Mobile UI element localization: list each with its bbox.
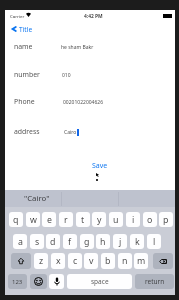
staticText: e xyxy=(47,214,52,226)
button[interactable]: m xyxy=(134,253,148,269)
staticText: name xyxy=(14,42,33,51)
staticText: o xyxy=(147,214,153,226)
button[interactable]: Save xyxy=(89,158,111,174)
button[interactable]: Emoji xyxy=(30,274,47,289)
staticText: Carrier xyxy=(10,13,25,19)
button[interactable]: p xyxy=(159,212,173,227)
button[interactable]: 123 xyxy=(8,274,27,289)
staticText: a xyxy=(18,236,23,248)
staticText: m xyxy=(137,255,146,267)
button[interactable]: g xyxy=(80,234,94,249)
staticText: j xyxy=(119,236,122,248)
staticText: p xyxy=(163,214,169,226)
staticText: space xyxy=(91,277,109,286)
button[interactable]: x xyxy=(51,253,65,269)
staticText: w xyxy=(30,214,37,226)
staticText: y xyxy=(97,214,102,226)
staticText: address xyxy=(14,127,40,136)
button[interactable]: n xyxy=(118,253,132,269)
staticText: l xyxy=(153,236,156,248)
button[interactable]: j xyxy=(113,234,127,249)
staticText: c xyxy=(73,255,78,267)
button[interactable]: Dictate xyxy=(49,274,64,289)
staticText: n xyxy=(122,255,128,267)
button[interactable]: Shift xyxy=(11,253,31,269)
button[interactable]: f xyxy=(63,234,77,249)
button[interactable]: space xyxy=(67,274,132,289)
staticText: v xyxy=(89,255,94,267)
button[interactable]: z xyxy=(34,253,48,269)
button[interactable]: c xyxy=(68,253,82,269)
button[interactable]: q xyxy=(9,212,23,227)
staticText: x xyxy=(56,255,61,267)
staticText: d xyxy=(50,236,56,248)
button[interactable]: a xyxy=(13,234,27,249)
staticText: h xyxy=(100,236,106,248)
staticText: 123 xyxy=(12,278,23,286)
button[interactable]: s xyxy=(30,234,44,249)
staticText: 010 xyxy=(62,72,71,79)
button[interactable]: Backspace xyxy=(153,253,173,269)
staticText: i xyxy=(132,214,135,226)
staticText: u xyxy=(113,214,119,226)
staticText: s xyxy=(35,236,40,248)
button[interactable]: t xyxy=(76,212,90,227)
staticText: Cairo xyxy=(64,129,77,136)
button[interactable]: b xyxy=(101,253,115,269)
button[interactable]: u xyxy=(109,212,123,227)
button[interactable]: d xyxy=(46,234,60,249)
staticText: b xyxy=(105,255,111,267)
staticText: number xyxy=(14,70,40,79)
staticText: q xyxy=(13,214,19,226)
staticText: he sham Bakr xyxy=(61,44,94,51)
button[interactable]: h xyxy=(96,234,110,249)
staticText: Title xyxy=(19,25,33,34)
staticText: 4:42 PM xyxy=(84,13,103,20)
button[interactable]: return xyxy=(135,274,174,289)
staticText: t xyxy=(81,214,85,226)
staticText: Phone xyxy=(14,97,35,106)
button[interactable]: Title xyxy=(5,23,33,35)
staticText: r xyxy=(64,214,68,226)
staticText: g xyxy=(84,236,90,248)
button[interactable]: l xyxy=(147,234,161,249)
staticText: z xyxy=(39,255,44,267)
button[interactable]: w xyxy=(26,212,40,227)
button[interactable]: k xyxy=(130,234,144,249)
button[interactable]: "Cairo" xyxy=(5,190,61,207)
staticText: 00201022004626 xyxy=(63,99,104,106)
button[interactable]: y xyxy=(92,212,106,227)
button[interactable]: e xyxy=(42,212,56,227)
staticText: Save xyxy=(92,161,108,171)
staticText: k xyxy=(135,236,140,248)
button[interactable]: o xyxy=(143,212,157,227)
button[interactable]: v xyxy=(84,253,98,269)
button[interactable]: i xyxy=(126,212,140,227)
staticText: f xyxy=(68,236,72,248)
staticText: "Cairo" xyxy=(24,193,50,204)
staticText: return xyxy=(145,277,165,286)
button[interactable]: r xyxy=(59,212,73,227)
